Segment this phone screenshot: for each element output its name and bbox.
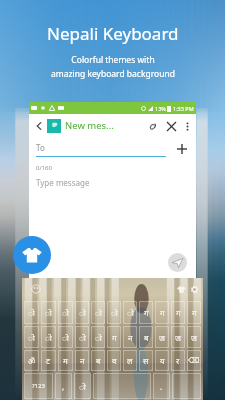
staticText: ो [79, 332, 86, 343]
staticText: ॐ [28, 355, 36, 366]
staticText: य [160, 355, 165, 366]
button[interactable]: ो [107, 301, 121, 324]
button[interactable]: ?123 [24, 373, 53, 399]
button[interactable]: ो [91, 301, 105, 324]
button[interactable]: Close [164, 119, 178, 133]
staticText: ग [160, 307, 165, 318]
button[interactable]: Add recipient [174, 141, 190, 157]
button[interactable]: ल [123, 350, 137, 371]
staticText: Nepali Keyboard [47, 22, 179, 45]
button[interactable]: ो [75, 326, 89, 348]
button[interactable]: ो [91, 326, 105, 348]
button[interactable]: म [58, 350, 73, 371]
staticText: व [112, 355, 117, 366]
button[interactable]: ग [187, 301, 201, 324]
staticText: ो [28, 332, 35, 343]
staticText: र [176, 355, 180, 366]
button[interactable]: ज [187, 326, 201, 348]
button[interactable] [172, 373, 201, 399]
button[interactable]: ो [74, 373, 91, 399]
staticText: ो [62, 307, 69, 318]
button[interactable]: ज [171, 326, 185, 348]
button[interactable]: ो [24, 326, 39, 348]
staticText: ग [112, 332, 117, 343]
staticText: ज [175, 332, 181, 343]
button[interactable]: ज [155, 326, 169, 348]
button[interactable]: न [75, 350, 89, 371]
staticText: 13% [155, 105, 166, 112]
staticText: ो [111, 307, 118, 318]
button[interactable]: व [107, 350, 121, 371]
button[interactable]: र [171, 350, 185, 371]
button[interactable]: ो [58, 326, 73, 348]
staticText: ो [45, 307, 52, 318]
button[interactable]: ो [58, 301, 73, 324]
staticText: 1:33 PM [173, 105, 194, 112]
button[interactable]: Attach [145, 119, 159, 133]
button[interactable]: ग [155, 301, 169, 324]
staticText: ल [127, 355, 133, 366]
button[interactable]: Themes [13, 236, 51, 274]
staticText: ज [159, 332, 165, 343]
button[interactable]: . [153, 373, 170, 399]
button[interactable]: न [123, 326, 137, 348]
button[interactable]: य [155, 350, 169, 371]
staticText: ो [95, 332, 102, 343]
staticText: ⌫ [188, 356, 200, 365]
button[interactable]: ब [91, 350, 105, 371]
staticText: Type message [36, 177, 90, 188]
staticText: ब [96, 355, 101, 366]
staticText: Colorful themes with [71, 54, 155, 66]
button[interactable]: स [139, 350, 153, 371]
staticText: ग [192, 307, 197, 318]
button[interactable]: ॐ [24, 350, 39, 371]
staticText: amazing keyboard background [51, 68, 175, 80]
button[interactable] [93, 373, 151, 399]
button[interactable]: Theme [177, 285, 186, 294]
button[interactable]: Settings [190, 285, 199, 294]
button[interactable]: ग [171, 301, 185, 324]
staticText: न [128, 332, 133, 343]
button[interactable]: , [55, 373, 72, 399]
staticText: म [63, 355, 68, 366]
staticText: 0/160 [36, 164, 52, 172]
button[interactable]: Emoji [31, 284, 41, 294]
staticText: ग [176, 307, 181, 318]
staticText: , [62, 381, 65, 392]
button[interactable]: ⌫ [187, 350, 201, 371]
staticText: To [36, 142, 45, 153]
button[interactable]: ो [41, 326, 56, 348]
button[interactable]: ब [139, 326, 153, 348]
button[interactable]: ो [41, 301, 56, 324]
button[interactable]: ो [75, 301, 89, 324]
button[interactable]: ो [123, 301, 137, 324]
staticText: ो [127, 307, 134, 318]
staticText: New mes... [65, 119, 114, 132]
staticText: ो [79, 381, 86, 392]
staticText: ो [45, 332, 52, 343]
staticText: ब [144, 332, 149, 343]
button[interactable]: More options [181, 120, 193, 132]
staticText: ो [95, 307, 102, 318]
staticText: स [143, 355, 149, 366]
button[interactable]: ग [107, 326, 121, 348]
button[interactable]: ो [24, 301, 39, 324]
staticText: न [80, 355, 85, 366]
staticText: ो [62, 332, 69, 343]
staticText: ो [79, 307, 86, 318]
button[interactable]: Back [32, 119, 46, 133]
staticText: ज [191, 332, 197, 343]
staticText: ो [28, 307, 35, 318]
staticText: ?123 [32, 382, 45, 390]
button[interactable]: Send [168, 253, 187, 272]
staticText: . [160, 381, 163, 392]
staticText: ट [46, 355, 51, 366]
button[interactable]: ट [41, 350, 56, 371]
button[interactable]: ग [139, 301, 153, 324]
staticText: ग [144, 307, 149, 318]
